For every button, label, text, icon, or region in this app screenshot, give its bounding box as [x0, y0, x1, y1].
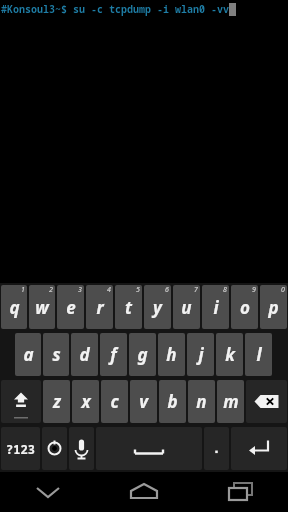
button[interactable]: m — [217, 380, 244, 423]
button[interactable]: q — [1, 285, 27, 329]
staticText: f — [110, 343, 117, 366]
button[interactable]: Recent apps — [192, 472, 288, 512]
button[interactable]: Backspace — [246, 380, 287, 423]
staticText: b — [167, 390, 178, 413]
staticText: #Konsoul3~$ su -c tcpdump -i wlan0 -vv — [1, 2, 229, 16]
button[interactable]: Hide keyboard — [0, 472, 96, 512]
staticText: i — [213, 296, 219, 319]
button[interactable]: Voice input — [69, 427, 94, 470]
staticText: w — [35, 296, 49, 319]
staticText: o — [240, 296, 250, 319]
staticText: u — [181, 296, 192, 319]
staticText: 6 — [165, 285, 169, 295]
staticText: l — [256, 343, 262, 366]
button[interactable]: s — [43, 333, 69, 376]
staticText: r — [96, 296, 104, 319]
button[interactable]: d — [71, 333, 98, 376]
staticText: h — [166, 343, 177, 366]
staticText: s — [52, 343, 61, 366]
button[interactable]: Home — [96, 472, 192, 512]
button[interactable]: t — [115, 285, 142, 329]
staticText: d — [79, 343, 90, 366]
staticText: 2 — [49, 285, 53, 295]
button[interactable]: c — [101, 380, 128, 423]
button[interactable]: j — [187, 333, 214, 376]
staticText: j — [198, 343, 204, 366]
staticText: p — [268, 296, 279, 319]
staticText: y — [153, 296, 162, 319]
button[interactable]: Shift — [1, 380, 41, 423]
button[interactable]: x — [72, 380, 99, 423]
staticText: v — [139, 390, 148, 413]
button[interactable]: e — [57, 285, 84, 329]
button[interactable]: v — [130, 380, 157, 423]
staticText: k — [225, 343, 235, 366]
button[interactable]: p — [260, 285, 287, 329]
button[interactable]: Enter — [231, 427, 287, 470]
button[interactable]: i — [202, 285, 229, 329]
button[interactable]: u — [173, 285, 200, 329]
staticText: t — [125, 296, 132, 319]
button[interactable]: o — [231, 285, 258, 329]
staticText: x — [81, 390, 91, 413]
staticText: 3 — [78, 285, 82, 295]
staticText: 1 — [21, 285, 25, 295]
staticText: 4 — [107, 285, 111, 295]
button[interactable]: Space — [96, 427, 202, 470]
button[interactable]: Period — [204, 427, 229, 470]
button[interactable]: l — [245, 333, 272, 376]
staticText: g — [137, 343, 148, 366]
button[interactable]: ?123 — [1, 427, 40, 470]
staticText: e — [66, 296, 76, 319]
staticText: c — [110, 390, 119, 413]
staticText: q — [9, 296, 20, 319]
staticText: m — [223, 390, 239, 413]
button[interactable]: g — [129, 333, 156, 376]
button[interactable]: a — [15, 333, 41, 376]
button[interactable]: f — [100, 333, 127, 376]
button[interactable]: z — [43, 380, 70, 423]
button[interactable]: k — [216, 333, 243, 376]
button[interactable]: w — [29, 285, 55, 329]
button[interactable]: h — [158, 333, 185, 376]
staticText: n — [196, 390, 207, 413]
staticText: 8 — [223, 285, 227, 295]
staticText: 0 — [281, 285, 285, 295]
staticText: a — [23, 343, 34, 366]
button[interactable]: n — [188, 380, 215, 423]
button[interactable]: Keyboard settings — [42, 427, 67, 470]
button[interactable]: y — [144, 285, 171, 329]
button[interactable]: r — [86, 285, 113, 329]
staticText: ?123 — [6, 441, 35, 457]
staticText: 7 — [194, 285, 198, 295]
button[interactable]: b — [159, 380, 186, 423]
staticText: z — [53, 390, 61, 413]
staticText: 9 — [252, 285, 256, 295]
staticText: 5 — [136, 285, 140, 295]
